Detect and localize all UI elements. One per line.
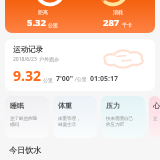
staticText: 体重管理， 健康生活 xyxy=(58,116,81,127)
button[interactable]: 今日活动概览 xyxy=(5,0,155,33)
staticText: 5.32 xyxy=(27,16,46,29)
staticText: 体重 xyxy=(58,101,72,110)
staticText: 公里 xyxy=(43,77,53,83)
staticText: 7'00" xyxy=(56,74,74,84)
staticText: 快来测测自己 的压力吧 xyxy=(106,116,133,127)
staticText: 距离 xyxy=(38,9,48,15)
staticText: 9.32 xyxy=(13,66,41,85)
staticText: 01:05:17 xyxy=(90,74,118,84)
button[interactable]: 压力 xyxy=(101,96,145,138)
staticText: 您了解您的睡 眠吗 xyxy=(10,116,37,127)
staticText: 千卡 xyxy=(122,22,132,28)
staticText: 睡眠 xyxy=(10,101,24,110)
button[interactable]: 心率 xyxy=(149,96,160,138)
staticText: 公里 xyxy=(48,22,58,28)
staticText: 消耗 xyxy=(113,9,123,15)
staticText: 287 xyxy=(103,16,120,29)
staticText: 运动记录 xyxy=(13,45,43,54)
staticText: 心 xyxy=(153,101,160,110)
staticText: 立 xyxy=(153,116,158,122)
staticText: 今日饮水 xyxy=(9,145,41,155)
button[interactable]: 运动记录 xyxy=(5,39,155,91)
staticText: 2018/6/23 户外跑步 xyxy=(13,56,60,63)
staticText: 压力 xyxy=(106,101,120,110)
staticText: /公里 xyxy=(75,76,87,83)
button[interactable]: 睡眠 xyxy=(5,96,49,138)
button[interactable]: 体重 xyxy=(53,96,97,138)
